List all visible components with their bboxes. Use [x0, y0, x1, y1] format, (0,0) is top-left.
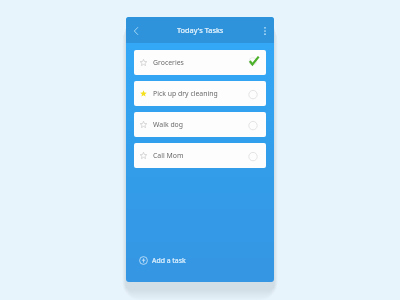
- staticText: Add a task: [152, 256, 186, 265]
- button[interactable]: Star Call Mom: [136, 149, 150, 163]
- staticText: Pick up dry cleaning: [153, 89, 218, 98]
- staticText: Today's Tasks: [177, 25, 224, 35]
- button[interactable]: Add a task: [126, 239, 274, 282]
- button[interactable]: Star Walk dog: [134, 112, 266, 137]
- button[interactable]: Unstar Pick up dry cleaning: [134, 81, 266, 106]
- button[interactable]: Star Groceries: [136, 56, 150, 70]
- button[interactable]: Star Walk dog: [136, 118, 150, 132]
- staticText: Call Mom: [153, 151, 184, 160]
- button[interactable]: Star Groceries: [134, 50, 266, 75]
- button[interactable]: More options: [257, 23, 271, 37]
- button[interactable]: Mark Groceries not done: [246, 56, 260, 70]
- button[interactable]: Mark Call Mom done: [246, 149, 260, 163]
- staticText: Groceries: [153, 58, 184, 67]
- button[interactable]: Mark Walk dog done: [246, 118, 260, 132]
- button[interactable]: Star Call Mom: [134, 143, 266, 168]
- staticText: Walk dog: [153, 120, 184, 129]
- button[interactable]: Unstar Pick up dry cleaning: [136, 87, 150, 101]
- button[interactable]: Mark Pick up dry cleaning done: [246, 87, 260, 101]
- button[interactable]: Back: [129, 23, 143, 37]
